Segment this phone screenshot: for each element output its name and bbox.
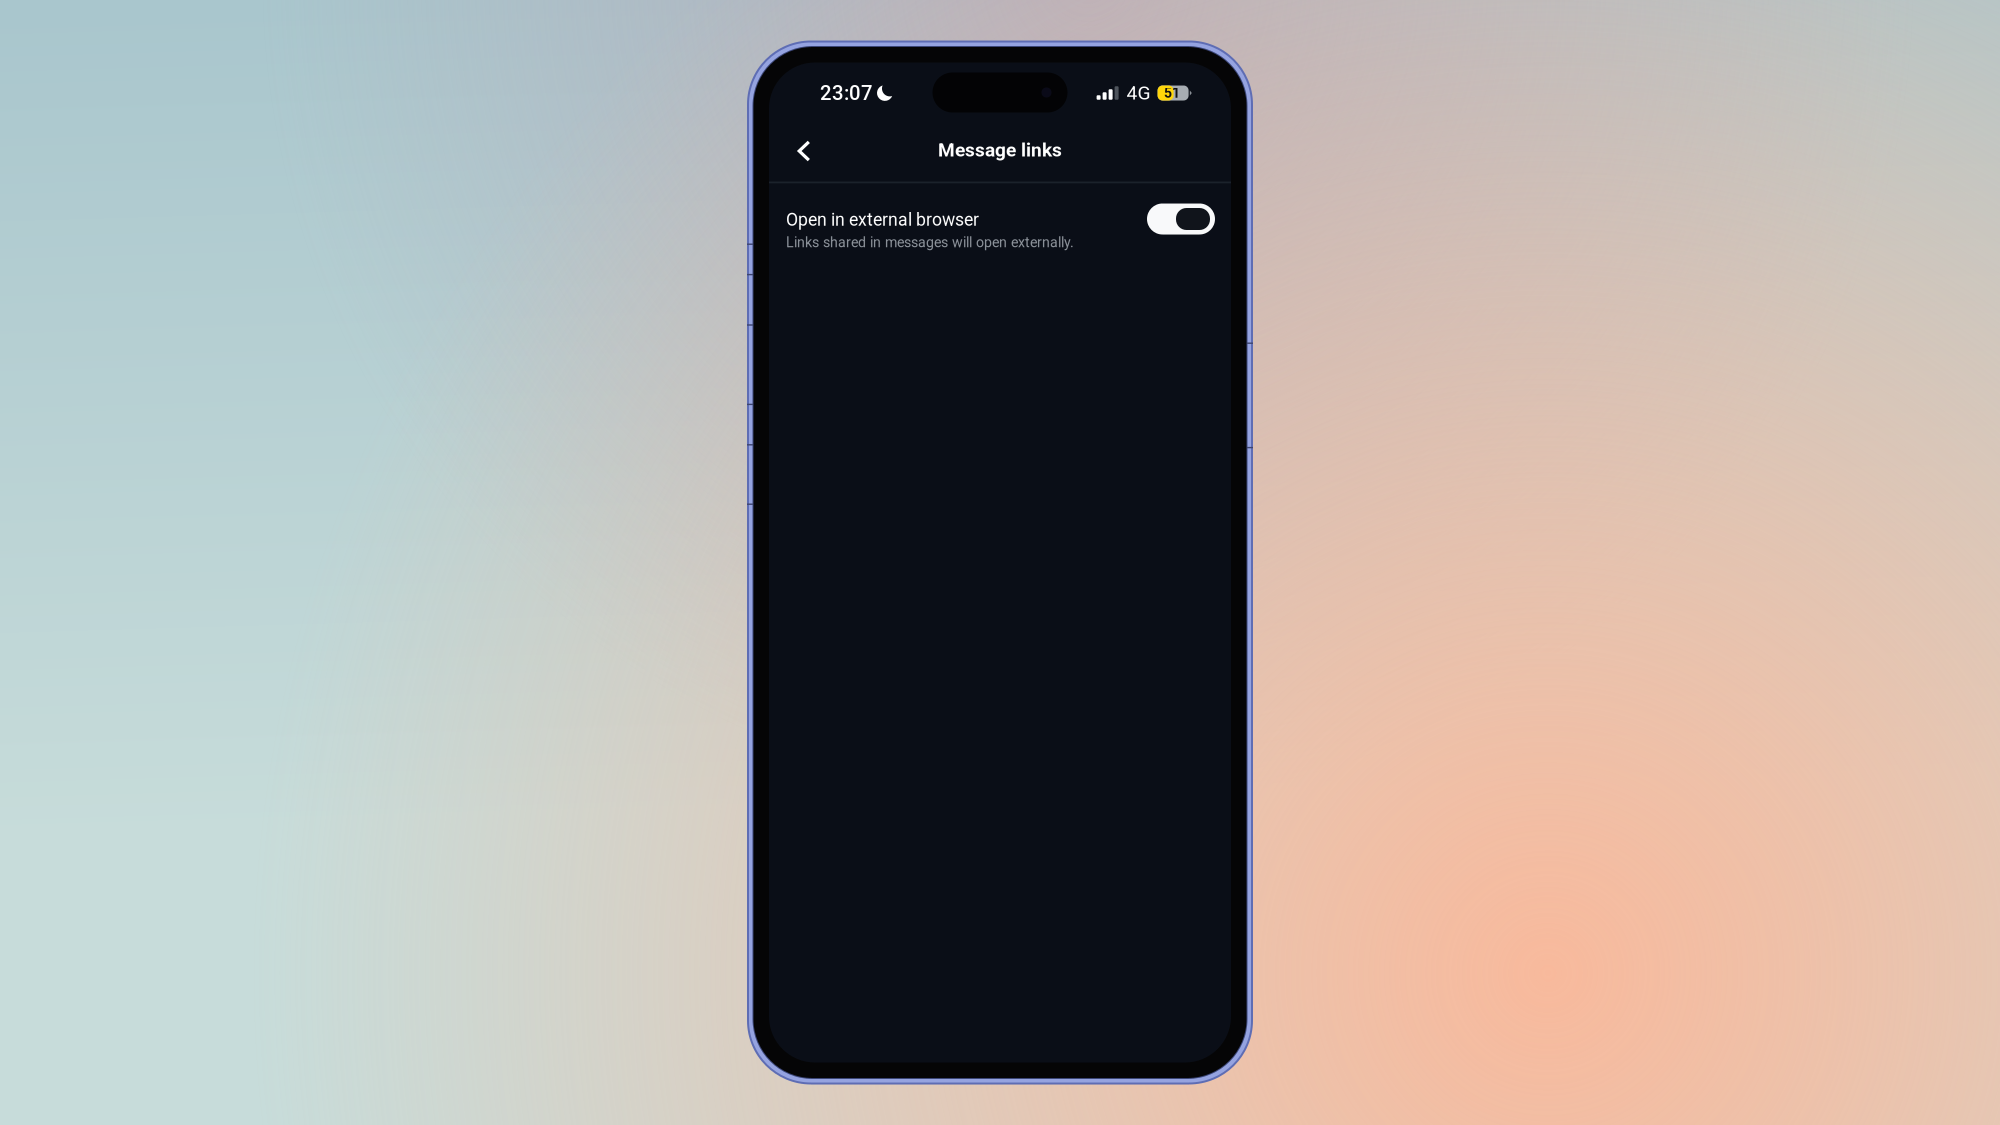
staticText: Message links bbox=[938, 139, 1062, 161]
button[interactable]: Back bbox=[782, 129, 826, 173]
staticText: 4G bbox=[1127, 82, 1151, 104]
staticText: 51 bbox=[1164, 85, 1180, 101]
staticText: Links shared in messages will open exter… bbox=[786, 234, 1074, 251]
staticText: Open in external browser bbox=[786, 209, 979, 230]
staticText: 23:07 bbox=[820, 81, 873, 105]
button[interactable]: Open in external browser bbox=[769, 183, 1231, 267]
